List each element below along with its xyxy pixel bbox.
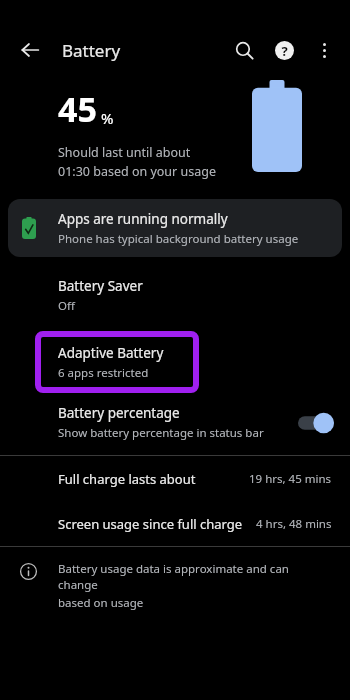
other: Information (20, 563, 37, 580)
staticText: Adaptive Battery (58, 344, 164, 362)
button[interactable]: Help (264, 30, 304, 70)
button[interactable]: More options (304, 30, 344, 70)
staticText: Battery Saver (58, 277, 143, 295)
staticText: Off (58, 298, 75, 314)
button[interactable]: Apps are running normally (8, 199, 342, 257)
staticText: Battery usage data is approximate and ca… (58, 561, 324, 593)
other: Battery percentage toggle (298, 412, 334, 434)
staticText: Screen usage since full charge (58, 515, 256, 533)
staticText: Battery (62, 39, 121, 62)
staticText: ? (281, 42, 288, 60)
staticText: Show battery percentage in status bar (58, 425, 264, 441)
staticText: % (101, 108, 114, 128)
staticText: Should last until about (58, 144, 191, 161)
staticText: Full charge lasts about (58, 470, 249, 488)
button[interactable]: Adaptive Battery (38, 334, 196, 390)
button[interactable]: Screen usage since full charge (0, 501, 350, 546)
staticText: Battery percentage (58, 404, 180, 422)
button[interactable]: Battery Saver (0, 275, 350, 320)
button[interactable]: Battery percentage (0, 402, 350, 447)
staticText: 19 hrs, 45 mins (249, 471, 332, 487)
staticText: 6 apps restricted (58, 365, 149, 381)
staticText: 4 hrs, 48 mins (256, 516, 332, 532)
button[interactable]: Search (224, 30, 264, 70)
staticText: based on usage (58, 595, 144, 611)
staticText: Apps are running normally (58, 210, 228, 228)
staticText: Phone has typical background battery usa… (58, 231, 299, 247)
button[interactable]: Back (10, 30, 50, 70)
staticText: 45 (58, 86, 97, 132)
staticText: 01:30 based on your usage (58, 163, 216, 180)
button[interactable]: Full charge lasts about (0, 456, 350, 501)
